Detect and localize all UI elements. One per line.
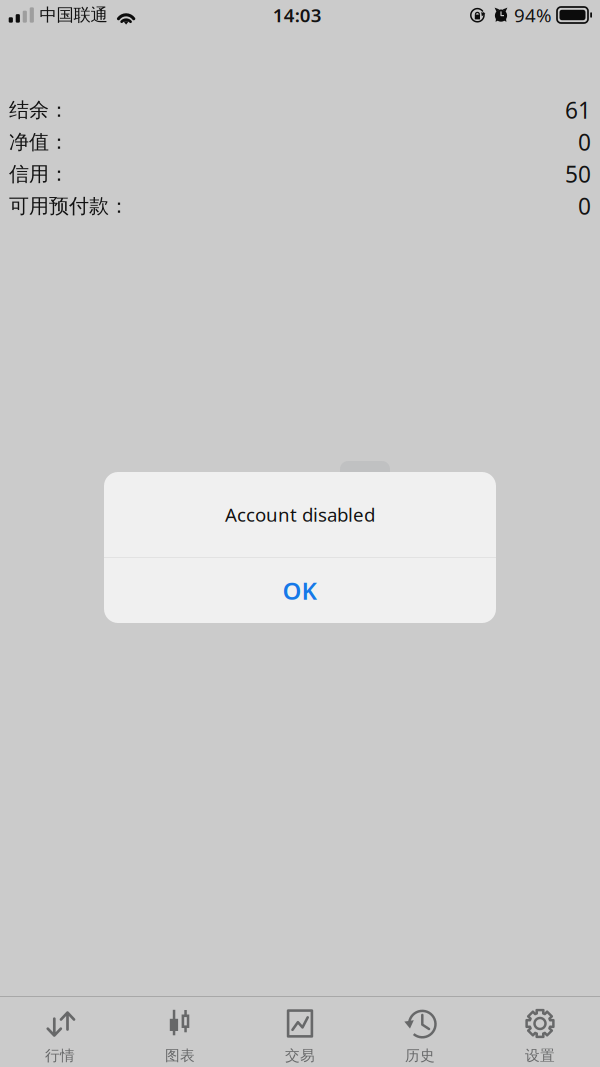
- button[interactable]: 行情: [0, 995, 120, 1067]
- staticText: 图表: [165, 1046, 195, 1064]
- staticText: Account disabled: [225, 502, 375, 527]
- button[interactable]: OK: [104, 558, 496, 623]
- staticText: 94%: [514, 3, 552, 27]
- staticText: 设置: [525, 1046, 555, 1064]
- staticText: 14:03: [273, 3, 322, 27]
- staticText: 中国联通: [40, 4, 108, 26]
- staticText: 交易: [285, 1046, 315, 1064]
- staticText: 0: [578, 191, 591, 221]
- staticText: 50: [565, 159, 591, 189]
- button[interactable]: 交易: [240, 995, 360, 1067]
- staticText: OK: [282, 575, 317, 606]
- staticText: 0: [578, 127, 591, 157]
- staticText: 61: [565, 95, 591, 125]
- staticText: 可用预付款：: [9, 194, 129, 218]
- staticText: 信用：: [9, 162, 69, 186]
- button[interactable]: 历史: [360, 995, 480, 1067]
- staticText: 净值：: [9, 130, 69, 154]
- button[interactable]: 设置: [480, 995, 600, 1067]
- staticText: 历史: [405, 1046, 435, 1064]
- button[interactable]: 图表: [120, 995, 240, 1067]
- staticText: 结余：: [9, 98, 69, 122]
- staticText: 行情: [45, 1046, 75, 1064]
